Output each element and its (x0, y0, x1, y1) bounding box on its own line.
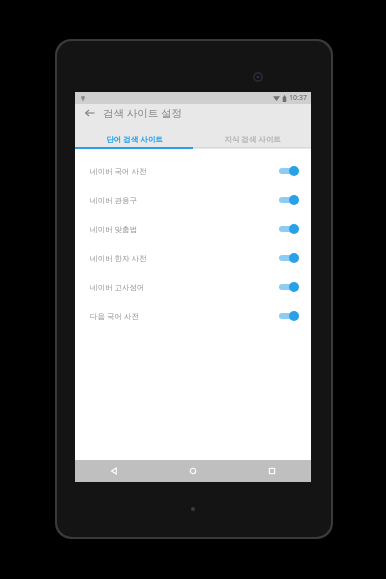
staticText: 네이버 고사성어 (90, 282, 278, 292)
button[interactable]: 네이버 고사성어 (75, 272, 311, 301)
staticText: 네이버 맞춤법 (90, 224, 278, 234)
staticText: 10:37 (289, 93, 307, 103)
staticText: 네이버 국어 사전 (90, 166, 278, 176)
staticText: 단어 검색 사이트 (106, 134, 163, 144)
staticText: 네이버 한자 사전 (90, 253, 278, 263)
button[interactable]: 네이버 한자 사전 (75, 243, 311, 272)
button[interactable]: 네이버 맞춤법 (75, 214, 311, 243)
button[interactable]: 홈 (153, 460, 232, 482)
button[interactable]: 네이버 국어 사전 (75, 156, 311, 185)
button[interactable]: 지식 검색 사이트 (193, 130, 311, 147)
button[interactable]: 뒤로 가기 (81, 104, 99, 122)
staticText: 다음 국어 사전 (90, 311, 278, 321)
staticText: 네이버 관용구 (90, 195, 278, 205)
button[interactable]: 다음 국어 사전 (75, 301, 311, 330)
button[interactable]: 뒤로 (75, 460, 153, 482)
staticText: 지식 검색 사이트 (224, 134, 281, 144)
button[interactable]: 네이버 관용구 (75, 185, 311, 214)
button[interactable]: 최근 앱 (232, 460, 311, 482)
staticText: 검색 사이트 설정 (103, 106, 182, 120)
button[interactable]: 단어 검색 사이트 (75, 130, 193, 147)
